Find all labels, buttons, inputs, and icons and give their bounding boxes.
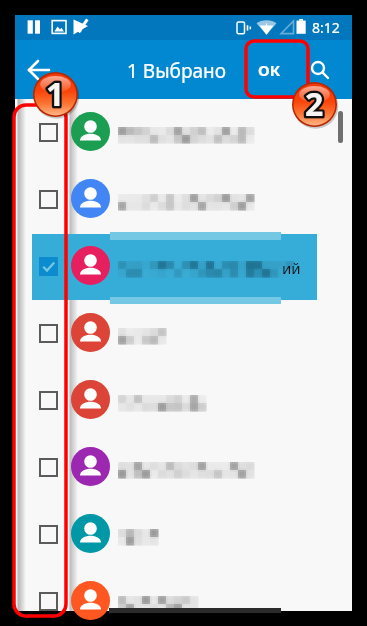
- button[interactable]: [15, 367, 352, 434]
- staticText: 2: [305, 82, 324, 126]
- button[interactable]: Back: [20, 50, 60, 90]
- staticText: ОК: [258, 60, 281, 80]
- staticText: ий: [282, 258, 301, 278]
- staticText: 2: [305, 82, 324, 126]
- staticText: 8:12: [312, 18, 340, 37]
- button[interactable]: [15, 166, 352, 233]
- button[interactable]: ОК: [249, 50, 289, 90]
- button[interactable]: [15, 99, 352, 166]
- button[interactable]: [15, 300, 352, 367]
- button[interactable]: [15, 568, 352, 611]
- button[interactable]: ий: [15, 233, 352, 300]
- staticText: 1 Выбрано: [127, 58, 226, 84]
- staticText: 1: [46, 72, 65, 116]
- button[interactable]: Search: [304, 52, 340, 88]
- button[interactable]: [15, 434, 352, 501]
- staticText: 1: [46, 72, 65, 116]
- button[interactable]: [15, 501, 352, 568]
